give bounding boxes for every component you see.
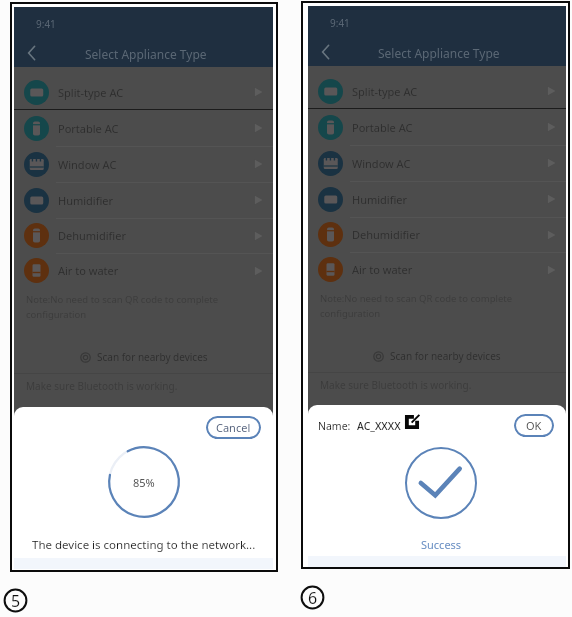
button[interactable]: Air to water [308, 252, 566, 287]
staticText: Scan for nearby devices [97, 350, 208, 364]
staticText: Air to water [58, 263, 119, 278]
staticText: Split-type AC [352, 84, 418, 99]
staticText: 6 [308, 587, 318, 609]
staticText: Dehumidifier [352, 227, 420, 242]
button[interactable]: Portable AC [14, 110, 273, 146]
button[interactable]: Air to water [14, 253, 273, 288]
staticText: AC_XXXX [357, 419, 401, 433]
staticText: Make sure Bluetooth is working. [320, 378, 472, 392]
staticText: Window AC [352, 156, 411, 171]
button[interactable]: Humidifier [308, 181, 566, 217]
staticText: 9:41 [36, 17, 56, 31]
staticText: 9:41 [330, 16, 350, 30]
button[interactable]: Dehumidifier [308, 217, 566, 252]
staticText: Window AC [58, 157, 117, 172]
staticText: Cancel [216, 420, 251, 435]
staticText: Portable AC [58, 121, 119, 136]
staticText: Name: [318, 419, 351, 433]
button[interactable]: Back [310, 37, 340, 67]
staticText: Split-type AC [58, 85, 124, 100]
button[interactable]: Edit name [403, 413, 420, 430]
button[interactable]: Scan for nearby devices [308, 346, 566, 366]
button[interactable]: Split-type AC [308, 66, 566, 108]
staticText: Dehumidifier [58, 228, 126, 243]
button[interactable]: Window AC [308, 145, 566, 181]
button[interactable]: Cancel [206, 416, 261, 439]
staticText: Humidifier [352, 192, 408, 207]
button[interactable]: Back [16, 38, 46, 68]
button[interactable]: Portable AC [308, 109, 566, 145]
staticText: Select Appliance Type [378, 45, 500, 61]
staticText: Note:No need to scan QR code to complete… [320, 292, 522, 320]
button[interactable]: Scan for nearby devices [14, 347, 273, 367]
button[interactable]: Humidifier [14, 182, 273, 218]
button[interactable]: Split-type AC [14, 67, 273, 109]
staticText: Portable AC [352, 120, 413, 135]
button[interactable]: OK [514, 414, 554, 437]
staticText: The device is connecting to the network.… [32, 537, 256, 553]
staticText: Select Appliance Type [85, 46, 207, 62]
staticText: 85% [133, 475, 155, 490]
button[interactable]: Window AC [14, 146, 273, 182]
staticText: Scan for nearby devices [390, 349, 501, 363]
staticText: Humidifier [58, 193, 114, 208]
staticText: Note:No need to scan QR code to complete… [26, 293, 229, 321]
staticText: Success [421, 537, 462, 552]
staticText: Make sure Bluetooth is working. [26, 379, 178, 393]
staticText: OK [526, 418, 542, 433]
button[interactable]: Dehumidifier [14, 218, 273, 253]
staticText: 5 [11, 590, 21, 612]
staticText: Air to water [352, 262, 413, 277]
